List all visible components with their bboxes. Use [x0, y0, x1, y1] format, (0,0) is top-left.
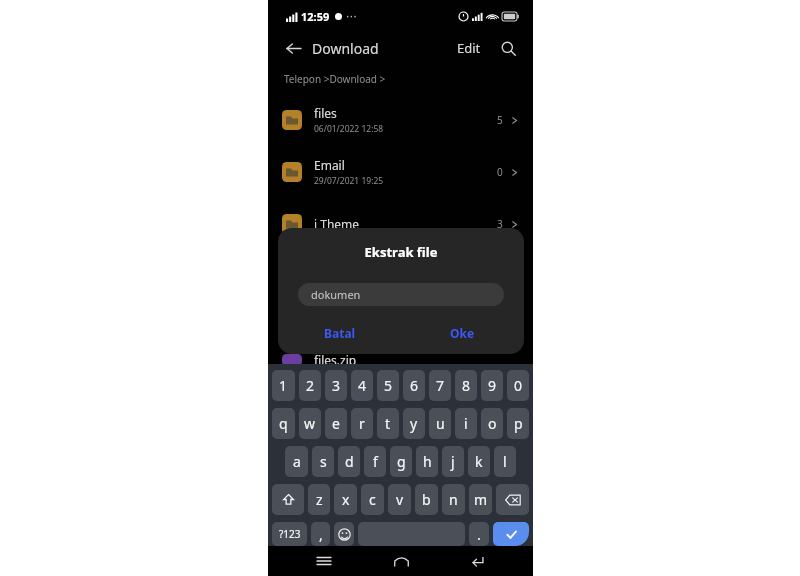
- staticText: r: [359, 414, 365, 433]
- staticText: 8: [462, 376, 471, 395]
- button[interactable]: Edit: [453, 35, 485, 61]
- button[interactable]: files: [268, 100, 533, 140]
- staticText: files: [314, 105, 337, 121]
- button[interactable]: i Theme: [268, 204, 533, 244]
- staticText: 3: [332, 376, 341, 395]
- button[interactable]: Recents: [304, 546, 344, 576]
- button[interactable]: Back: [457, 546, 497, 576]
- staticText: m: [474, 490, 488, 509]
- button[interactable]: .: [469, 522, 489, 546]
- button[interactable]: g: [390, 446, 412, 477]
- button[interactable]: Home: [381, 546, 421, 576]
- button[interactable]: 3: [325, 370, 347, 401]
- button[interactable]: ?123: [272, 522, 307, 546]
- staticText: g: [397, 452, 406, 471]
- button[interactable]: m: [469, 484, 492, 515]
- button[interactable]: Emoji: [334, 522, 354, 546]
- button[interactable]: Email: [268, 152, 533, 192]
- staticText: 12:59: [301, 9, 330, 24]
- button[interactable]: 0: [507, 370, 529, 401]
- staticText: e: [332, 414, 340, 433]
- staticText: t: [385, 414, 391, 433]
- staticText: y: [410, 414, 418, 433]
- staticText: 0: [497, 165, 503, 179]
- staticText: Download: [312, 39, 379, 58]
- staticText: a: [293, 452, 301, 471]
- staticText: n: [449, 490, 458, 509]
- button[interactable]: Batal: [278, 320, 401, 346]
- button[interactable]: dokumen: [298, 283, 504, 306]
- button[interactable]: s: [312, 446, 334, 477]
- button[interactable]: p: [507, 408, 529, 439]
- button[interactable]: 2: [299, 370, 321, 401]
- button[interactable]: Backspace: [496, 484, 529, 515]
- button[interactable]: x: [334, 484, 357, 515]
- staticText: i Theme: [314, 216, 360, 232]
- staticText: 3: [497, 217, 503, 231]
- button[interactable]: Oke: [401, 320, 524, 346]
- button[interactable]: 4: [351, 370, 373, 401]
- button[interactable]: Search: [497, 37, 519, 59]
- staticText: Ekstrak file: [278, 243, 524, 261]
- button[interactable]: Back: [282, 37, 304, 59]
- button[interactable]: v: [388, 484, 411, 515]
- button[interactable]: e: [325, 408, 347, 439]
- staticText: c: [369, 490, 376, 509]
- button[interactable]: c: [361, 484, 384, 515]
- staticText: 9: [488, 376, 497, 395]
- button[interactable]: f: [364, 446, 386, 477]
- button[interactable]: w: [299, 408, 321, 439]
- staticText: l: [503, 452, 507, 471]
- staticText: v: [396, 490, 404, 509]
- staticText: o: [488, 414, 497, 433]
- staticText: dokumen: [311, 287, 361, 302]
- button[interactable]: 8: [455, 370, 477, 401]
- staticText: h: [423, 452, 432, 471]
- button[interactable]: t: [377, 408, 399, 439]
- staticText: 0: [514, 376, 523, 395]
- button[interactable]: 1: [272, 370, 295, 401]
- staticText: ⋯: [346, 10, 357, 23]
- staticText: .: [477, 525, 481, 544]
- staticText: 4: [358, 376, 367, 395]
- staticText: u: [436, 414, 445, 433]
- staticText: Batal: [324, 325, 356, 341]
- staticText: q: [279, 414, 288, 433]
- button[interactable]: q: [272, 408, 295, 439]
- staticText: Edit: [457, 39, 481, 57]
- staticText: 2: [306, 376, 315, 395]
- button[interactable]: 6: [403, 370, 425, 401]
- staticText: b: [422, 490, 431, 509]
- button[interactable]: z: [308, 484, 330, 515]
- staticText: files.zip: [314, 352, 357, 368]
- button[interactable]: k: [468, 446, 490, 477]
- button[interactable]: 7: [429, 370, 451, 401]
- staticText: j: [451, 452, 455, 471]
- button[interactable]: o: [481, 408, 503, 439]
- button[interactable]: a: [285, 446, 308, 477]
- button[interactable]: u: [429, 408, 451, 439]
- staticText: Telepon >Download >: [284, 72, 386, 86]
- button[interactable]: b: [415, 484, 438, 515]
- button[interactable]: j: [442, 446, 464, 477]
- button[interactable]: Enter: [493, 522, 529, 546]
- button[interactable]: d: [338, 446, 360, 477]
- button[interactable]: y: [403, 408, 425, 439]
- staticText: d: [345, 452, 354, 471]
- button[interactable]: ,: [311, 522, 330, 546]
- button[interactable]: 9: [481, 370, 503, 401]
- button[interactable]: h: [416, 446, 438, 477]
- button[interactable]: r: [351, 408, 373, 439]
- staticText: w: [304, 414, 316, 433]
- staticText: Email: [314, 157, 345, 173]
- staticText: Oke: [450, 325, 475, 341]
- button[interactable]: 5: [377, 370, 399, 401]
- staticText: s: [320, 452, 327, 471]
- button[interactable]: l: [494, 446, 516, 477]
- button[interactable]: n: [442, 484, 465, 515]
- staticText: 29/07/2021 19:25: [314, 175, 384, 187]
- button[interactable]: i: [455, 408, 477, 439]
- button[interactable]: Shift: [272, 484, 304, 515]
- staticText: k: [475, 452, 483, 471]
